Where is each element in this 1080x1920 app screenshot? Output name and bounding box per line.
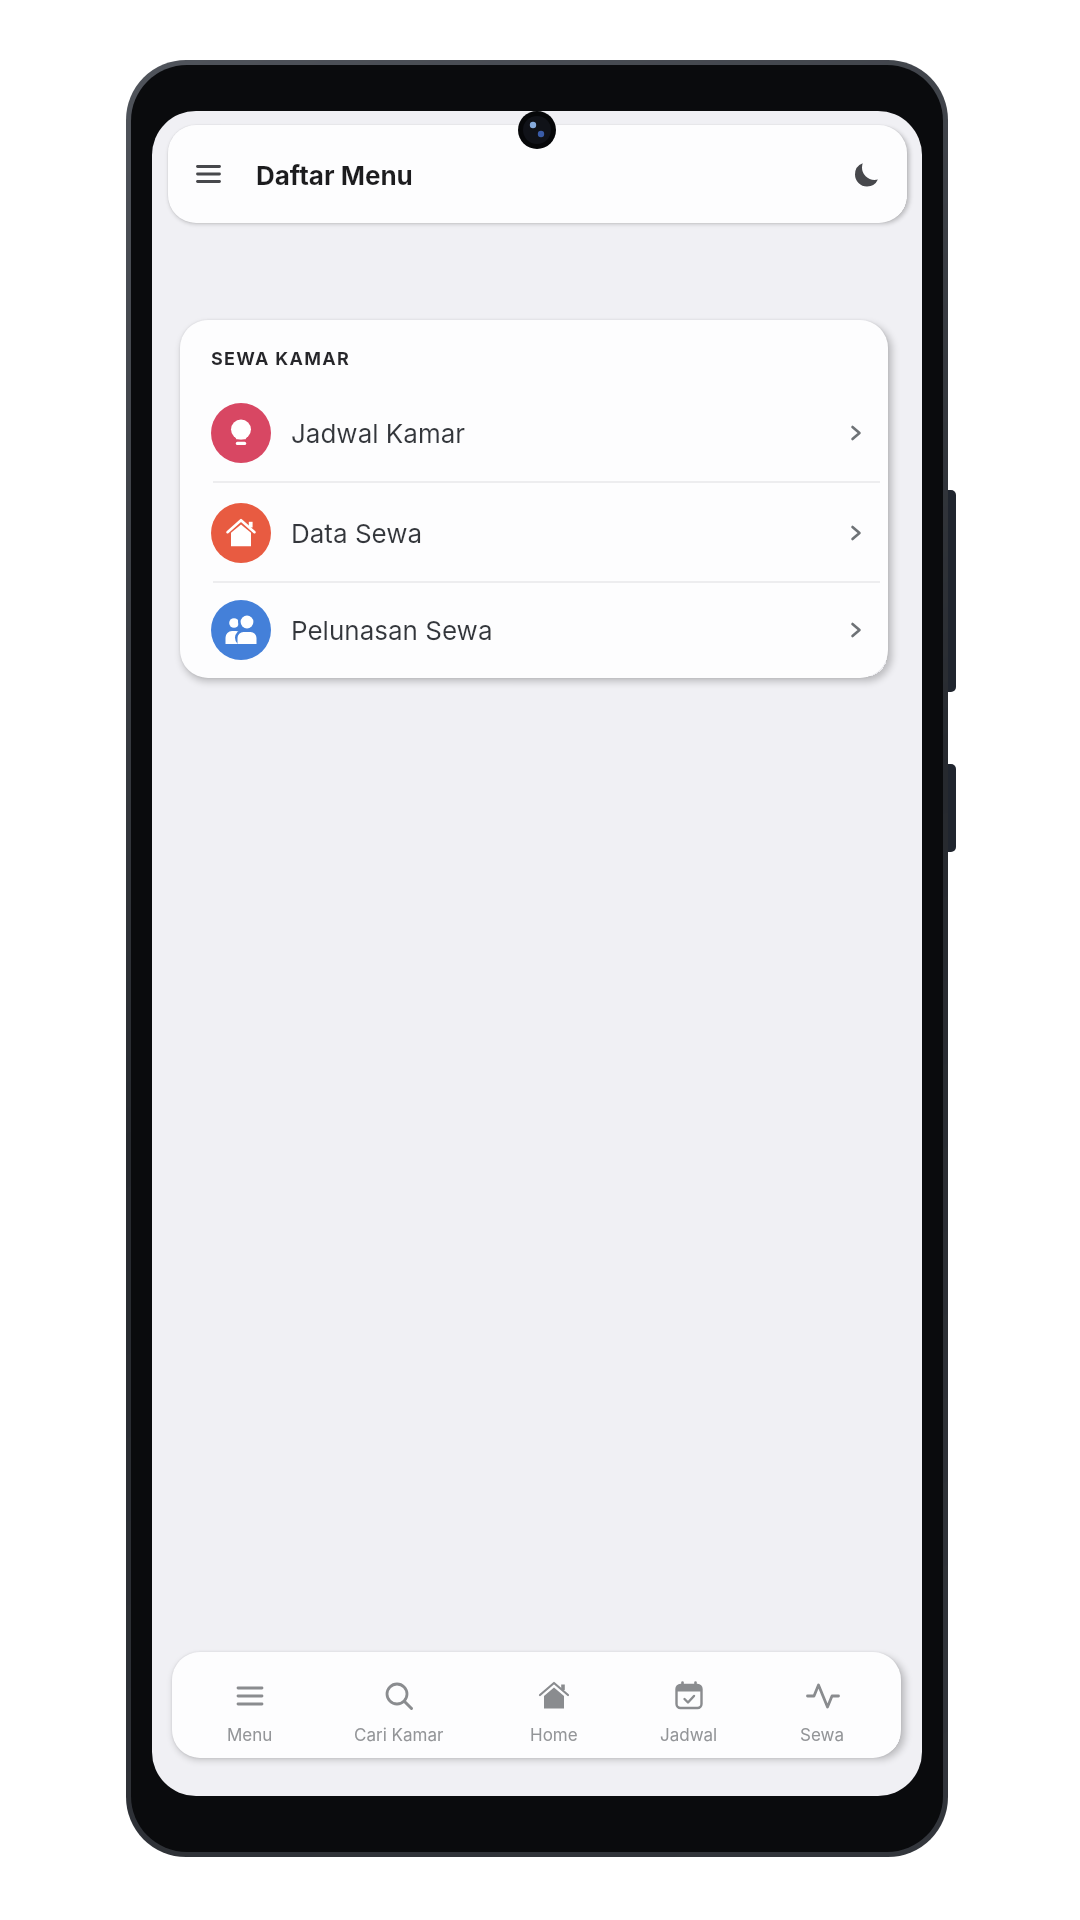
button[interactable]: Jadwal Kamar [180,383,888,483]
staticText: Pelunasan Sewa [291,615,493,646]
button[interactable]: Cari Kamar [341,1660,457,1752]
button[interactable]: Pelunasan Sewa [180,582,888,678]
staticText: Jadwal [660,1725,718,1746]
staticText: Cari Kamar [354,1725,444,1746]
staticText: Home [530,1725,578,1746]
button[interactable]: Sewa [764,1660,880,1752]
staticText: SEWA KAMAR [211,348,351,370]
staticText: Data Sewa [291,518,423,549]
button[interactable]: Jadwal [631,1660,747,1752]
staticText: Daftar Menu [256,160,413,191]
button[interactable]: Data Sewa [180,483,888,583]
button[interactable] [184,150,232,198]
staticText: Menu [227,1725,273,1746]
staticText: Sewa [800,1725,844,1746]
button[interactable] [843,150,891,198]
button[interactable]: Menu [192,1660,308,1752]
staticText: Jadwal Kamar [291,418,466,449]
button[interactable]: Home [496,1660,612,1752]
